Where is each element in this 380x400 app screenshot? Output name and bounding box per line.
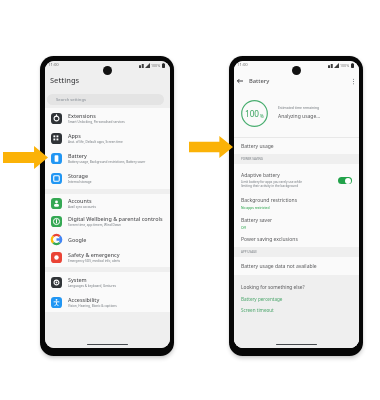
button[interactable]: Safety & emergency — [45, 248, 170, 266]
staticText: APP USAGE — [241, 250, 257, 254]
staticText: Storage — [68, 172, 89, 179]
button[interactable]: Extensions — [45, 108, 170, 128]
staticText: Limit battery for apps you rarely use wh… — [241, 180, 303, 188]
staticText: Power saving exclusions — [241, 236, 298, 243]
staticText: Internal storage — [68, 180, 92, 184]
staticText: Settings — [50, 75, 80, 85]
staticText: Emergency SOS, medical info, alerts — [68, 259, 121, 263]
staticText: No apps restricted — [241, 205, 270, 209]
staticText: 100% — [151, 63, 161, 68]
staticText: Battery saver — [241, 217, 273, 224]
button[interactable]: Accessibility — [45, 292, 170, 312]
staticText: Avail sync accounts — [68, 205, 96, 209]
button[interactable]: Battery usage data not available — [234, 263, 359, 270]
staticText: 11:00 — [48, 62, 59, 68]
staticText: Screen time, app timers, Wind Down — [68, 223, 121, 227]
staticText: Estimated time remaining — [278, 105, 320, 110]
staticText: Asst. of life, Default apps, Screen time — [68, 140, 123, 144]
button[interactable]: Screen timeout — [241, 307, 274, 313]
button[interactable]: Battery usage — [234, 139, 359, 153]
button[interactable]: Back — [236, 77, 244, 85]
staticText: Safety & emergency — [68, 251, 120, 258]
button[interactable]: Search settings — [47, 94, 164, 105]
staticText: Languages & keyboard, Gestures — [68, 284, 116, 288]
staticText: Apps — [68, 132, 81, 139]
staticText: Search settings — [56, 97, 86, 103]
button[interactable]: Adaptive battery — [234, 168, 359, 192]
staticText: Digital Wellbeing & parental controls — [68, 215, 163, 222]
staticText: 11:00 — [237, 62, 248, 68]
staticText: Analyzing usage... — [278, 113, 321, 120]
staticText: Google — [68, 236, 87, 243]
button[interactable]: Digital Wellbeing & parental controls — [45, 212, 170, 230]
staticText: Battery — [68, 152, 87, 159]
staticText: Battery usage — [241, 143, 274, 150]
staticText: POWER SAVING — [241, 157, 263, 161]
button[interactable]: More options — [349, 77, 357, 85]
staticText: % — [260, 113, 264, 119]
staticText: Accounts — [68, 197, 92, 204]
button[interactable]: Power saving exclusions — [234, 236, 359, 243]
staticText: System — [68, 276, 87, 283]
button[interactable]: System — [45, 272, 170, 292]
button[interactable]: Background restrictions — [234, 197, 359, 209]
staticText: Battery usage data not available — [241, 263, 317, 270]
button[interactable]: Google — [45, 230, 170, 248]
staticText: Vision, Hearing, Bionic & captions — [68, 304, 117, 308]
button[interactable]: Battery — [45, 148, 170, 168]
staticText: Battery usage, Background restrictions, … — [68, 160, 146, 164]
staticText: Battery — [249, 77, 270, 85]
button[interactable]: Battery percentage — [241, 296, 283, 302]
staticText: 100 — [245, 108, 260, 119]
staticText: Looking for something else? — [241, 284, 305, 291]
staticText: Accessibility — [68, 296, 100, 303]
staticText: Extensions — [68, 112, 96, 119]
staticText: Background restrictions — [241, 197, 298, 204]
staticText: 100% — [340, 63, 350, 68]
staticText: Smart Unlocking, Personalised services — [68, 120, 125, 124]
button[interactable]: Battery saver — [234, 217, 359, 229]
staticText: Adaptive battery — [241, 172, 280, 179]
staticText: Off — [241, 225, 246, 229]
button[interactable]: Storage — [45, 168, 170, 188]
button[interactable]: Apps — [45, 128, 170, 148]
button[interactable]: Accounts — [45, 194, 170, 212]
